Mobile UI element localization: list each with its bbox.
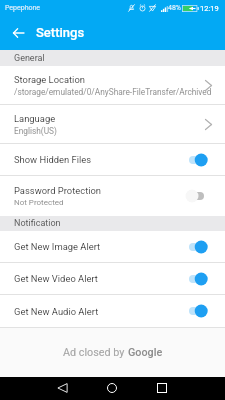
button[interactable]: Get New Audio Alert	[0, 295, 225, 327]
staticText: 48%	[168, 4, 181, 12]
button[interactable]: Recent apps	[149, 376, 175, 399]
staticText: Notification	[14, 218, 61, 229]
staticText: Show Hidden Files	[14, 154, 92, 165]
staticText: English(US)	[14, 126, 57, 136]
button[interactable]: Password Protection	[0, 176, 225, 216]
staticText: Ad closed by	[63, 346, 128, 359]
staticText: Language	[14, 113, 56, 124]
staticText: Pepephone	[5, 4, 41, 12]
staticText: /storage/emulated/0/AnyShare-FileTransfe…	[14, 87, 212, 97]
staticText: Get New Image Alert	[14, 241, 101, 252]
button[interactable]: Get New Video Alert	[0, 263, 225, 294]
staticText: Get New Video Alert	[14, 273, 98, 284]
button[interactable]: Back	[5, 20, 31, 46]
staticText: General	[14, 53, 45, 64]
staticText: Storage Location	[14, 74, 85, 85]
staticText: Settings	[36, 25, 85, 40]
button[interactable]: Storage Location	[0, 66, 225, 104]
staticText: Password Protection	[14, 185, 102, 196]
staticText: Get New Audio Alert	[14, 306, 99, 317]
staticText: Not Protected	[14, 198, 64, 207]
button[interactable]: Show Hidden Files	[0, 144, 225, 175]
button[interactable]: Language	[0, 105, 225, 143]
staticText: 12:19	[200, 4, 219, 13]
button[interactable]: Back	[49, 376, 75, 399]
button[interactable]: Home	[99, 376, 125, 399]
button[interactable]: Get New Image Alert	[0, 231, 225, 262]
button[interactable]: On	[189, 239, 210, 255]
staticText: Google	[128, 346, 163, 359]
button[interactable]: On	[189, 271, 210, 287]
button[interactable]: Off	[189, 188, 210, 204]
button[interactable]: On	[189, 303, 210, 319]
button[interactable]: On	[189, 152, 210, 168]
